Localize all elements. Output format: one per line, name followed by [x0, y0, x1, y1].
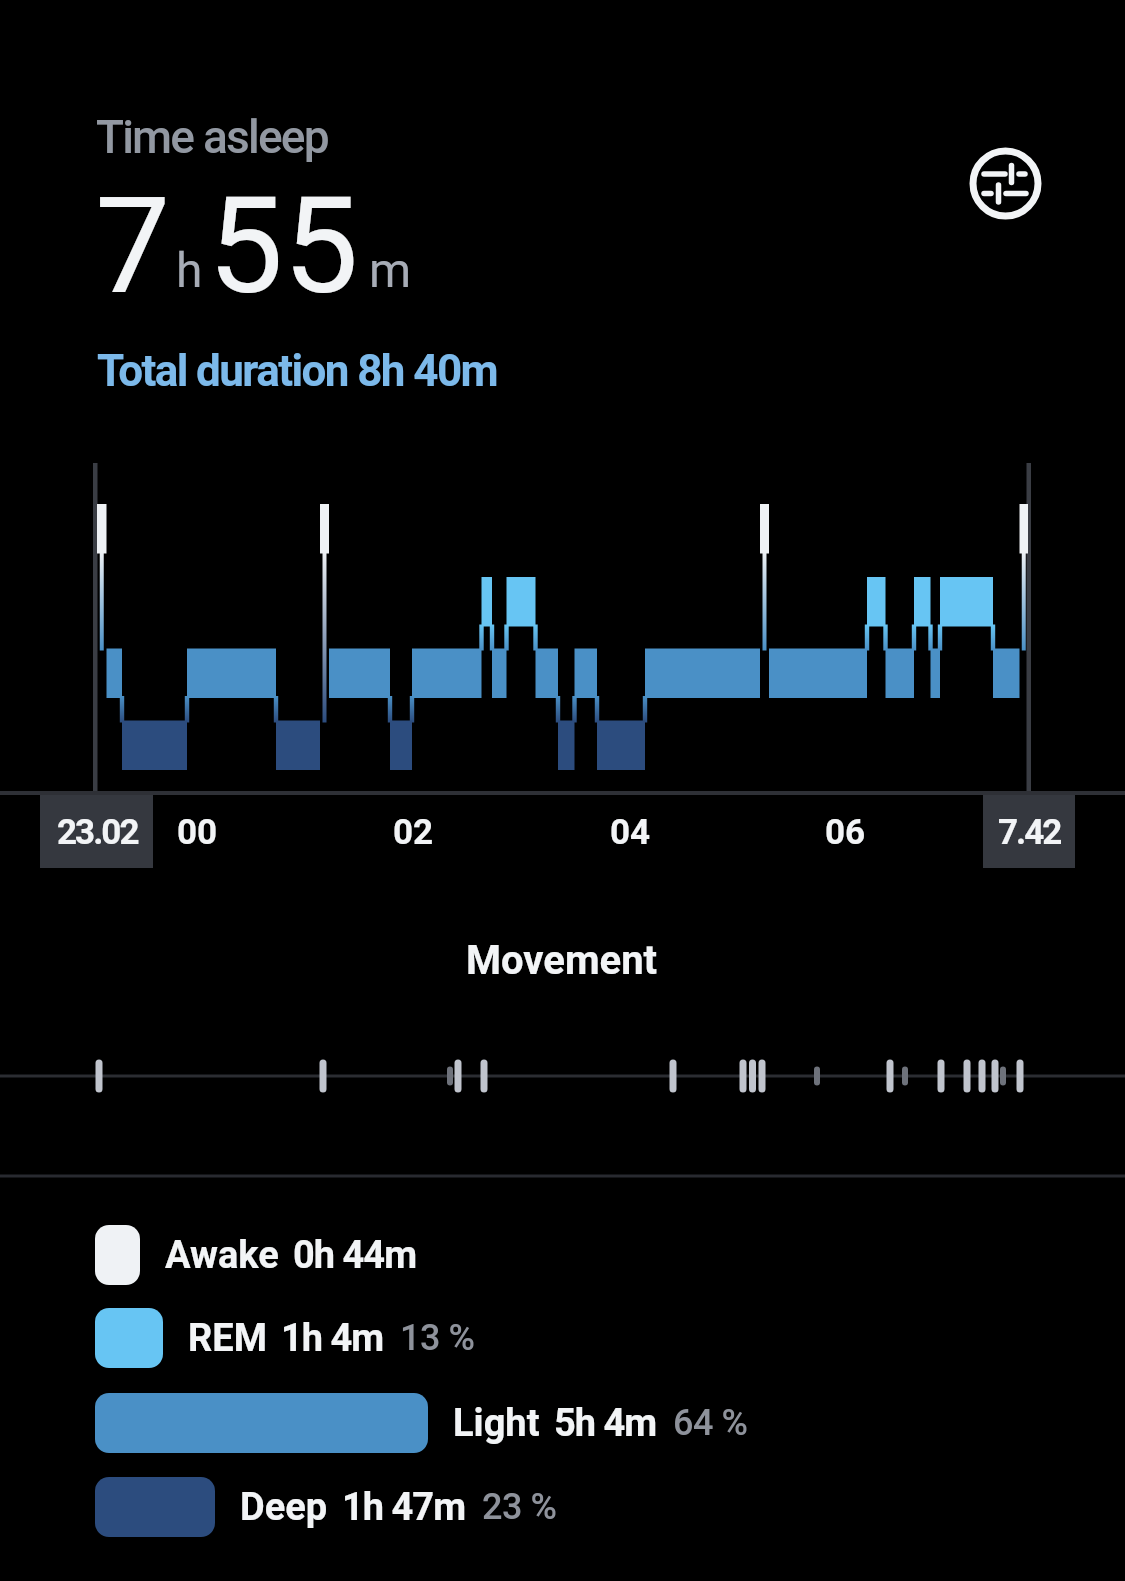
- staticText: REM: [188, 1316, 267, 1361]
- staticText: Deep: [240, 1485, 328, 1530]
- staticText: m: [369, 242, 412, 298]
- staticText: 06: [825, 812, 866, 853]
- staticText: 13 %: [400, 1317, 475, 1359]
- button[interactable]: Deep: [95, 1477, 557, 1537]
- staticText: 02: [393, 812, 434, 853]
- staticText: 1h 4m: [281, 1316, 384, 1361]
- staticText: 1h 47m: [342, 1485, 466, 1530]
- staticText: 23.02: [57, 812, 138, 853]
- staticText: Time asleep: [96, 110, 328, 164]
- staticText: Movement: [466, 937, 658, 984]
- staticText: 04: [610, 812, 651, 853]
- staticText: h: [176, 242, 203, 298]
- staticText: 55: [208, 168, 359, 325]
- staticText: 7: [95, 168, 171, 325]
- staticText: Awake: [165, 1233, 279, 1278]
- staticText: 23 %: [482, 1486, 557, 1528]
- staticText: 00: [177, 812, 218, 853]
- staticText: 7.42: [998, 812, 1061, 853]
- button[interactable]: Light: [95, 1393, 748, 1453]
- button[interactable]: REM: [95, 1308, 475, 1368]
- button[interactable]: [965, 143, 1045, 223]
- staticText: 5h 4m: [554, 1401, 657, 1446]
- staticText: Light: [453, 1401, 540, 1446]
- staticText: 64 %: [673, 1402, 748, 1444]
- button[interactable]: Awake: [95, 1225, 417, 1285]
- staticText: 0h 44m: [293, 1233, 417, 1278]
- staticText: Total duration 8h 40m: [97, 345, 498, 397]
